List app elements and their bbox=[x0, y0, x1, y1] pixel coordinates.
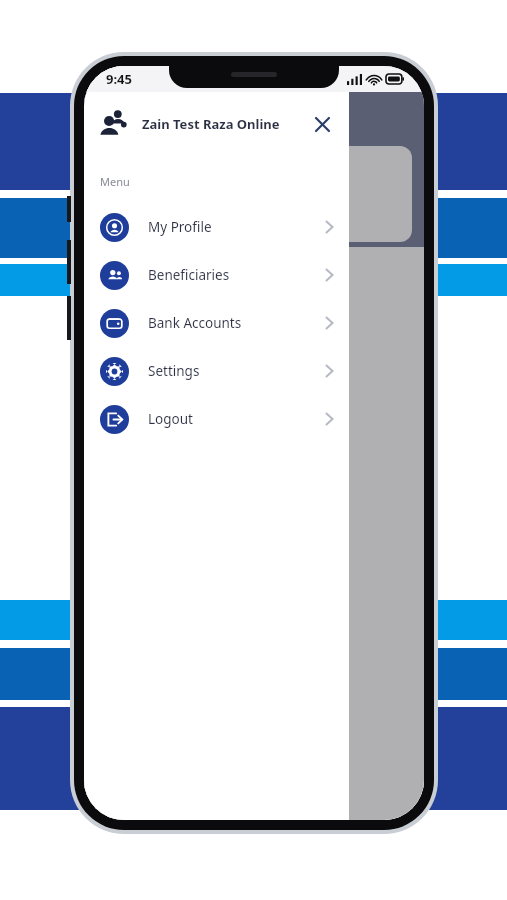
button[interactable]: Beneficiaries bbox=[84, 251, 349, 299]
staticText: 9:45 bbox=[106, 70, 132, 88]
staticText: Zain Test Raza Online bbox=[142, 115, 280, 133]
staticText: Beneficiaries bbox=[148, 266, 230, 284]
button[interactable]: Bank Accounts bbox=[84, 299, 349, 347]
button[interactable]: My Profile bbox=[84, 203, 349, 251]
staticText: Logout bbox=[148, 410, 193, 428]
button[interactable]: Close menu bbox=[309, 111, 335, 137]
staticText: Bank Accounts bbox=[148, 314, 242, 332]
button[interactable]: Settings bbox=[84, 347, 349, 395]
staticText: My Profile bbox=[148, 218, 212, 236]
staticText: Menu bbox=[100, 174, 130, 189]
staticText: Settings bbox=[148, 362, 200, 380]
button[interactable]: Logout bbox=[84, 395, 349, 443]
